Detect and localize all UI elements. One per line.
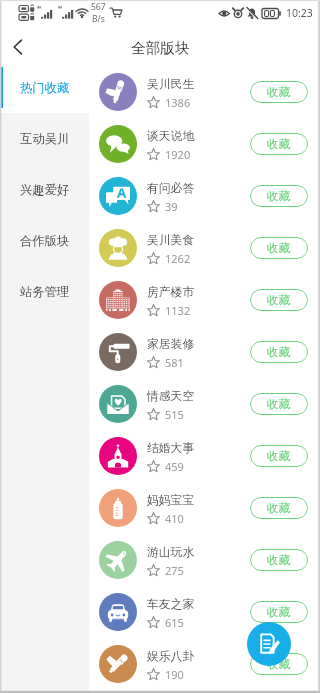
staticText: 热门收藏 (20, 80, 70, 95)
staticText: 收藏 (267, 137, 291, 152)
button[interactable]: 妈妈宝宝 (89, 482, 320, 534)
staticText: 妈妈宝宝 (147, 493, 195, 508)
staticText: 459 (165, 459, 184, 474)
staticText: 家居装修 (147, 337, 195, 352)
staticText: 收藏 (267, 293, 291, 308)
button[interactable]: 收藏 (250, 497, 308, 519)
staticText: 1262 (165, 251, 191, 266)
button[interactable]: New post (247, 622, 291, 666)
staticText: 410 (165, 511, 184, 526)
staticText: 收藏 (267, 605, 291, 620)
staticText: 吴川美食 (147, 233, 195, 248)
button[interactable]: 收藏 (250, 393, 308, 415)
staticText: 娱乐八卦 (147, 649, 195, 664)
staticText: 站务管理 (20, 284, 70, 299)
button[interactable]: 车友之家 (89, 586, 320, 638)
button[interactable]: 房产楼市 (89, 274, 320, 326)
staticText: 房产楼市 (147, 285, 195, 300)
button[interactable]: 情感天空 (89, 378, 320, 430)
button[interactable]: 吴川美食 (89, 222, 320, 274)
button[interactable]: 游山玩水 (89, 534, 320, 586)
staticText: 275 (165, 563, 184, 578)
staticText: 收藏 (267, 241, 291, 256)
staticText: 1386 (165, 95, 191, 110)
button[interactable]: 家居装修 (89, 326, 320, 378)
button[interactable]: 结婚大事 (89, 430, 320, 482)
button[interactable]: 热门收藏 (0, 62, 89, 113)
button[interactable]: 收藏 (250, 133, 308, 155)
button[interactable]: 站务管理 (0, 266, 89, 317)
staticText: 收藏 (267, 449, 291, 464)
staticText: 车友之家 (147, 597, 195, 612)
button[interactable]: 收藏 (250, 601, 308, 623)
button[interactable]: 兴趣爱好 (0, 164, 89, 215)
button[interactable]: 互动吴川 (0, 113, 89, 164)
button[interactable]: 合作版块 (0, 215, 89, 266)
staticText: 581 (165, 355, 184, 370)
button[interactable]: 谈天说地 (89, 118, 320, 170)
staticText: 190 (165, 667, 184, 682)
button[interactable]: 娱乐八卦 (89, 638, 320, 690)
staticText: 收藏 (267, 501, 291, 516)
staticText: 515 (165, 407, 184, 422)
button[interactable]: 吴川民生 (89, 66, 320, 118)
staticText: 1920 (165, 147, 191, 162)
button[interactable]: 收藏 (250, 185, 308, 207)
button[interactable]: Back (0, 26, 36, 62)
staticText: 谈天说地 (147, 129, 195, 144)
staticText: 收藏 (267, 345, 291, 360)
staticText: B/s (92, 13, 105, 25)
staticText: 567 (91, 1, 106, 13)
staticText: 615 (165, 615, 184, 630)
button[interactable]: 收藏 (250, 237, 308, 259)
staticText: 情感天空 (147, 389, 195, 404)
button[interactable]: 收藏 (250, 289, 308, 311)
staticText: 收藏 (267, 657, 291, 672)
button[interactable]: 收藏 (250, 445, 308, 467)
staticText: 有问必答 (147, 181, 195, 196)
staticText: 收藏 (267, 397, 291, 412)
staticText: 收藏 (267, 85, 291, 100)
staticText: 10:23 (286, 6, 313, 20)
staticText: 结婚大事 (147, 441, 195, 456)
button[interactable]: 收藏 (250, 653, 308, 675)
staticText: 游山玩水 (147, 545, 195, 560)
staticText: 收藏 (267, 189, 291, 204)
staticText: 合作版块 (20, 233, 70, 248)
staticText: 全部版块 (131, 39, 190, 57)
staticText: 1132 (165, 303, 191, 318)
button[interactable]: 收藏 (250, 81, 308, 103)
staticText: 收藏 (267, 553, 291, 568)
staticText: 兴趣爱好 (20, 182, 70, 197)
button[interactable]: 收藏 (250, 341, 308, 363)
button[interactable]: 有问必答 (89, 170, 320, 222)
staticText: 互动吴川 (20, 131, 70, 146)
button[interactable]: 收藏 (250, 549, 308, 571)
staticText: 吴川民生 (147, 77, 195, 92)
staticText: 39 (165, 199, 178, 214)
